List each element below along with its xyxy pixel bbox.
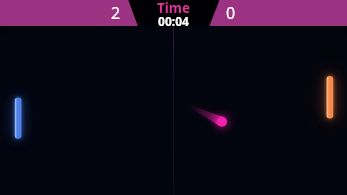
button[interactable]: 0 bbox=[218, 1, 244, 25]
staticText: Time bbox=[0, 0, 347, 17]
staticText: 0 bbox=[226, 2, 236, 24]
staticText: 2 bbox=[111, 2, 121, 24]
button[interactable]: 2 bbox=[103, 1, 129, 25]
staticText: 00:04 bbox=[0, 13, 347, 29]
